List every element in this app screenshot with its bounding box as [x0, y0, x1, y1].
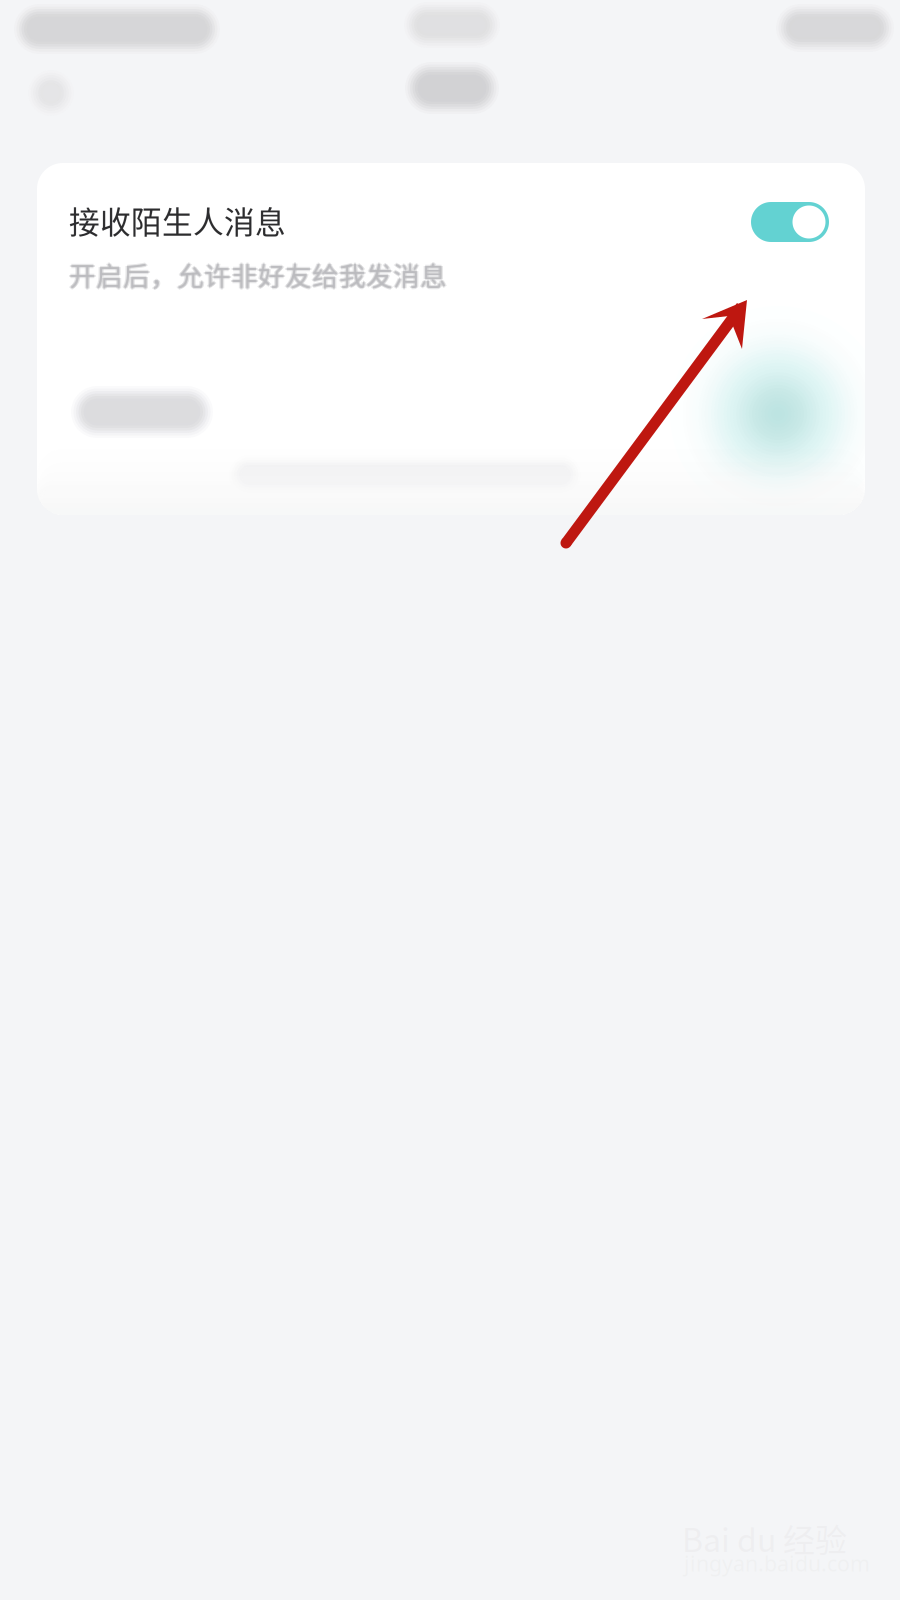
staticText: 开启后，允许非好友给我发消息 [69, 255, 447, 294]
staticText: 接收陌生人消息 [69, 198, 286, 242]
staticText: 开启后，允许非好友给我发消息 [69, 256, 447, 295]
staticText: 开启后，允许非好友给我发消息 [69, 254, 447, 292]
button[interactable]: 接收陌生人消息 [37, 163, 865, 313]
staticText: 开启后，允许非好友给我发消息 [70, 255, 448, 294]
button[interactable]: 接收陌生人消息开关 [751, 202, 829, 242]
button[interactable]: 设置项 [37, 323, 865, 513]
staticText: 开启后，允许非好友给我发消息 [68, 255, 446, 294]
